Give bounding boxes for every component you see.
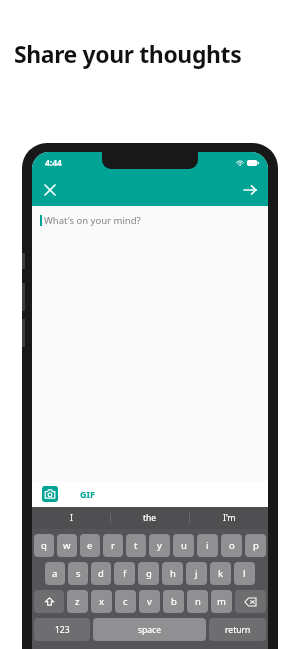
staticText: k (218, 567, 224, 580)
button[interactable]: Add photo (42, 486, 58, 502)
staticText: p (253, 539, 259, 552)
staticText: c (123, 595, 128, 608)
staticText: b (171, 595, 177, 608)
staticText: I'm (223, 512, 236, 524)
staticText: f (123, 567, 127, 580)
button[interactable]: What's on your mind? (40, 214, 141, 227)
staticText: What's on your mind? (44, 214, 141, 227)
staticText: v (147, 595, 152, 608)
staticText: g (146, 567, 152, 580)
button[interactable]: v (139, 590, 160, 613)
staticText: return (225, 624, 251, 636)
button[interactable]: return (209, 618, 266, 641)
button[interactable]: e (80, 534, 100, 557)
button[interactable]: l (234, 562, 255, 585)
staticText: a (52, 567, 58, 580)
button[interactable]: h (162, 562, 183, 585)
button[interactable]: j (186, 562, 207, 585)
button[interactable]: m (211, 590, 232, 613)
staticText: q (41, 539, 47, 552)
staticText: e (87, 539, 93, 552)
staticText: the (143, 512, 157, 524)
staticText: j (195, 567, 198, 580)
staticText: I (70, 512, 73, 524)
staticText: 123 (55, 624, 70, 636)
button[interactable]: q (34, 534, 54, 557)
button[interactable]: Backspace (235, 590, 266, 613)
button[interactable]: r (103, 534, 123, 557)
button[interactable]: d (91, 562, 111, 585)
button[interactable]: z (67, 590, 88, 613)
button[interactable]: Post (237, 177, 263, 203)
staticText: z (75, 595, 80, 608)
button[interactable]: g (138, 562, 159, 585)
staticText: x (99, 595, 105, 608)
button[interactable]: GIF (80, 488, 95, 500)
button[interactable]: space (93, 618, 206, 641)
staticText: n (195, 595, 201, 608)
button[interactable]: k (210, 562, 231, 585)
staticText: y (157, 539, 162, 552)
button[interactable]: Shift (34, 590, 64, 613)
button[interactable]: p (245, 534, 266, 557)
staticText: GIF (80, 488, 95, 500)
button[interactable]: a (45, 562, 65, 585)
button[interactable]: the (111, 507, 189, 529)
button[interactable]: Close (37, 177, 63, 203)
staticText: d (98, 567, 104, 580)
button[interactable]: 123 (34, 618, 90, 641)
button[interactable]: w (57, 534, 77, 557)
staticText: 4:44 (45, 157, 62, 169)
staticText: r (111, 539, 115, 552)
staticText: s (76, 567, 81, 580)
button[interactable]: b (163, 590, 184, 613)
button[interactable]: t (126, 534, 146, 557)
staticText: l (243, 567, 246, 580)
button[interactable]: n (187, 590, 208, 613)
staticText: Share your thoughts (14, 38, 242, 69)
staticText: h (170, 567, 176, 580)
staticText: space (138, 624, 161, 636)
staticText: m (217, 595, 226, 608)
button[interactable]: x (91, 590, 112, 613)
button[interactable]: y (149, 534, 170, 557)
staticText: w (63, 539, 71, 552)
button[interactable]: i (197, 534, 218, 557)
staticText: o (229, 539, 235, 552)
button[interactable]: I (32, 507, 110, 529)
button[interactable]: s (68, 562, 88, 585)
staticText: u (181, 539, 187, 552)
button[interactable]: I'm (190, 507, 268, 529)
button[interactable]: u (173, 534, 194, 557)
button[interactable]: f (114, 562, 135, 585)
staticText: t (134, 539, 138, 552)
button[interactable]: c (115, 590, 136, 613)
button[interactable]: o (221, 534, 242, 557)
staticText: i (206, 539, 209, 552)
